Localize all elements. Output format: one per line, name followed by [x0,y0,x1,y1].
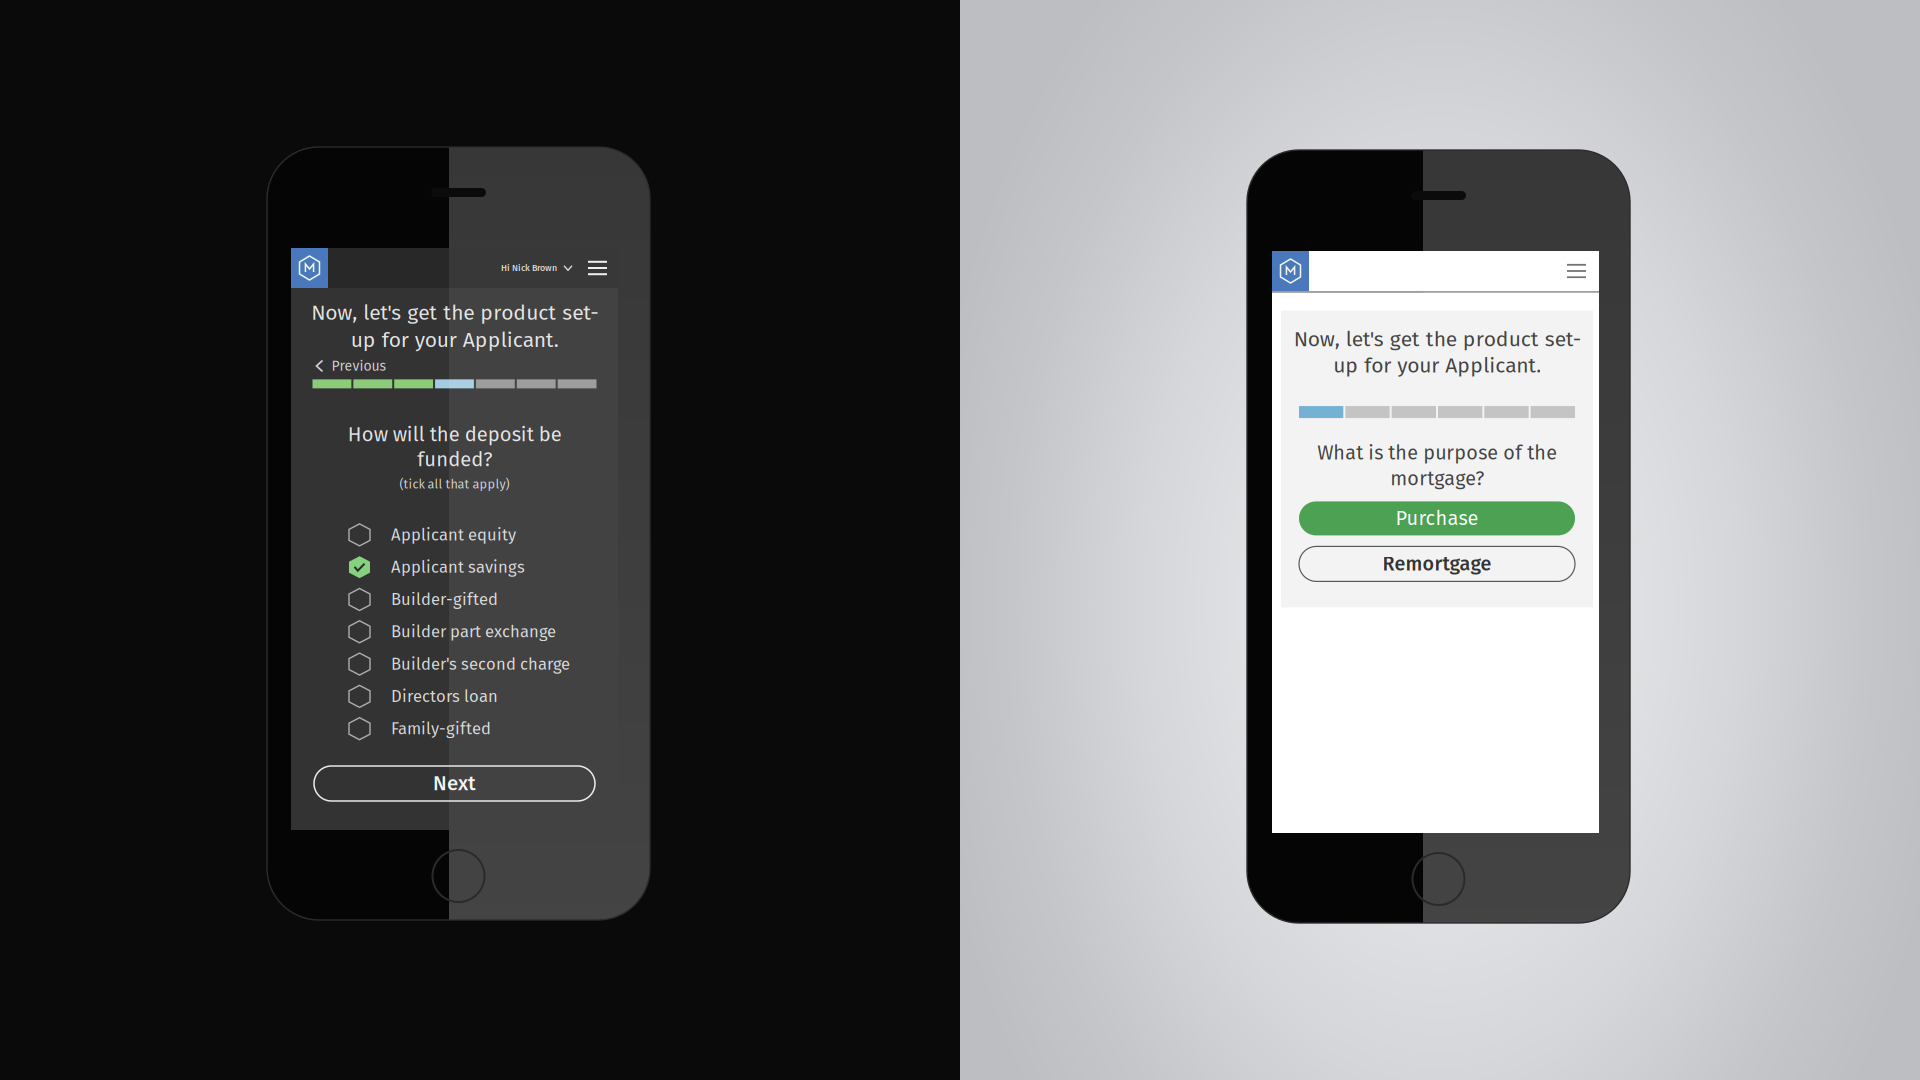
staticText: Builder-gifted [391,589,498,609]
staticText: Hi Nick Brown [501,263,557,273]
staticText: Builder's second charge [391,654,570,674]
staticText: Directors loan [391,686,498,706]
button[interactable]: Next [314,766,595,801]
staticText: Next [433,771,476,796]
button[interactable]: Builder-gifted [349,588,594,610]
button[interactable]: Hi Nick Brown [501,248,588,288]
staticText: Now, let's get the product set- up for y… [1293,326,1580,378]
staticText: Family-gifted [391,719,491,739]
staticText: (tick all that apply) [399,477,509,492]
staticText: Applicant savings [391,557,525,577]
button[interactable]: Purchase [1299,501,1575,535]
button[interactable]: Remortgage [1299,546,1575,581]
button[interactable]: Builder's second charge [349,653,594,675]
button[interactable]: Builder part exchange [349,621,594,643]
button[interactable]: Applicant savings [349,556,594,578]
button[interactable]: Applicant equity [349,524,594,546]
staticText: What is the purpose of the mortgage? [1317,441,1557,490]
button[interactable]: Menu [1567,251,1599,291]
staticText: Previous [331,358,386,374]
staticText: Builder part exchange [391,622,556,642]
staticText: How will the deposit be funded? [347,422,561,472]
button[interactable]: Menu [588,248,618,288]
button[interactable]: Directors loan [349,685,594,707]
button[interactable]: Previous [312,358,386,374]
staticText: Applicant equity [391,525,516,545]
staticText: Now, let's get the product set- up for y… [311,300,598,353]
staticText: Purchase [1395,506,1478,530]
staticText: Remortgage [1382,552,1491,576]
button[interactable]: Family-gifted [349,718,594,740]
